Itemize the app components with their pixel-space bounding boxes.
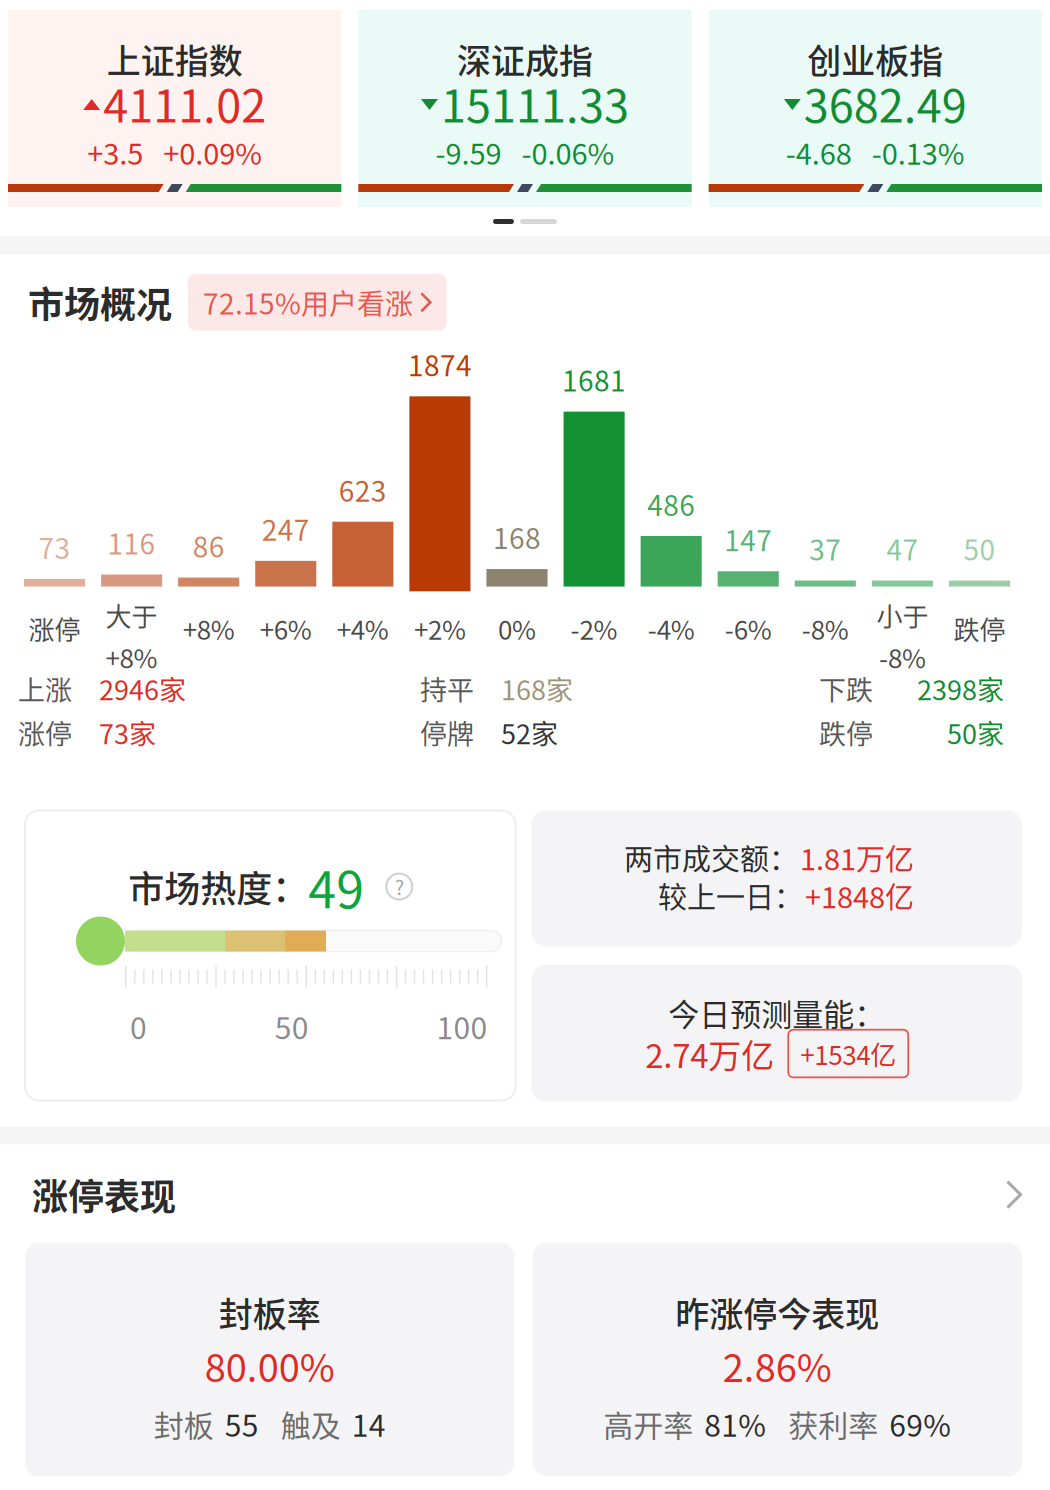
staticText: +4% [337, 609, 389, 647]
staticText: 涨停 [28, 609, 80, 647]
staticText: -4.68 [786, 131, 852, 173]
staticText: 69% [889, 1402, 951, 1445]
staticText: -0.06% [521, 131, 614, 173]
staticText: 2.86% [723, 1338, 832, 1393]
staticText: 较上一日： [658, 874, 803, 916]
staticText: -6% [725, 609, 772, 647]
staticText: 涨停表现 [32, 1168, 176, 1221]
staticText: 大于 [106, 596, 158, 634]
staticText: 停牌 [420, 713, 474, 752]
staticText: 深证成指 [457, 34, 593, 84]
staticText: 3682.49 [804, 70, 967, 136]
staticText: 0% [498, 609, 536, 647]
staticText: 49 [308, 850, 364, 923]
staticText: +3.5 [87, 131, 143, 173]
staticText: 168家 [501, 669, 573, 708]
staticText: 55 [225, 1402, 259, 1445]
staticText: 下跌 [819, 669, 873, 708]
staticText: 0 [130, 1004, 147, 1048]
staticText: +2% [414, 609, 466, 647]
staticText: 封板率 [219, 1288, 321, 1337]
staticText: 15111.33 [441, 70, 629, 136]
button[interactable]: 封板率 [25, 1243, 514, 1476]
staticText: 跌停 [819, 713, 873, 752]
staticText: 14 [352, 1402, 386, 1445]
button[interactable]: 72.15%用户看涨 [188, 274, 447, 330]
staticText: 47 [886, 528, 918, 568]
staticText: +6% [260, 609, 312, 647]
staticText: 高开率 [603, 1402, 693, 1445]
staticText: 147 [724, 519, 772, 559]
staticText: 168 [493, 516, 541, 557]
staticText: 1874 [408, 344, 472, 384]
staticText: 1.81万亿 [800, 836, 914, 878]
staticText: 持平 [420, 669, 474, 708]
staticText: 73 [38, 526, 70, 567]
staticText: ? [395, 872, 404, 901]
staticText: 247 [262, 508, 310, 549]
staticText: 1681 [562, 359, 626, 400]
staticText: 623 [339, 469, 387, 510]
button[interactable]: 深证成指 [358, 10, 692, 207]
staticText: 封板 [154, 1402, 214, 1445]
staticText: -0.13% [872, 131, 965, 173]
staticText: 100 [436, 1004, 487, 1048]
button[interactable]: 创业板指 [709, 10, 1042, 207]
staticText: -9.59 [435, 131, 501, 173]
staticText: 跌停 [953, 609, 1005, 647]
staticText: 两市成交额： [624, 836, 798, 878]
staticText: -8% [802, 609, 849, 647]
staticText: +0.09% [163, 131, 262, 173]
staticText: 创业板指 [807, 34, 943, 84]
staticText: 116 [108, 522, 156, 562]
staticText: 2398家 [917, 669, 1004, 708]
button[interactable]: 昨涨停今表现 [532, 1243, 1022, 1476]
staticText: 市场概况 [28, 276, 172, 328]
staticText: 小于 [876, 596, 928, 634]
staticText: 触及 [281, 1402, 341, 1445]
staticText: 上涨 [18, 669, 72, 708]
staticText: 37 [809, 528, 841, 568]
staticText: +8% [106, 638, 158, 676]
staticText: +8% [183, 609, 235, 647]
staticText: 86 [193, 525, 225, 566]
staticText: 上证指数 [107, 34, 243, 84]
staticText: 72.15%用户看涨 [203, 282, 413, 322]
staticText: 今日预测量能： [668, 990, 885, 1035]
staticText: 486 [647, 483, 695, 524]
staticText: 市场热度： [128, 860, 308, 913]
staticText: 涨停 [18, 713, 72, 752]
staticText: +1534亿 [800, 1035, 896, 1072]
staticText: 2946家 [99, 669, 186, 708]
staticText: +1848亿 [805, 874, 914, 916]
staticText: 81% [704, 1402, 766, 1445]
staticText: -2% [571, 609, 618, 647]
staticText: 4111.02 [103, 70, 266, 136]
staticText: -4% [648, 609, 695, 647]
staticText: 50 [963, 528, 995, 568]
staticText: 50家 [947, 713, 1004, 752]
button[interactable]: 上证指数 [8, 10, 341, 207]
button[interactable]: 涨停表现 [0, 1144, 1050, 1243]
staticText: 2.74万亿 [645, 1030, 774, 1077]
staticText: 50 [275, 1004, 309, 1048]
staticText: 80.00% [205, 1338, 335, 1393]
staticText: 52家 [501, 713, 558, 752]
staticText: 获利率 [788, 1402, 878, 1445]
staticText: 昨涨停今表现 [675, 1288, 879, 1337]
staticText: 73家 [99, 713, 156, 752]
staticText: -8% [879, 638, 926, 676]
